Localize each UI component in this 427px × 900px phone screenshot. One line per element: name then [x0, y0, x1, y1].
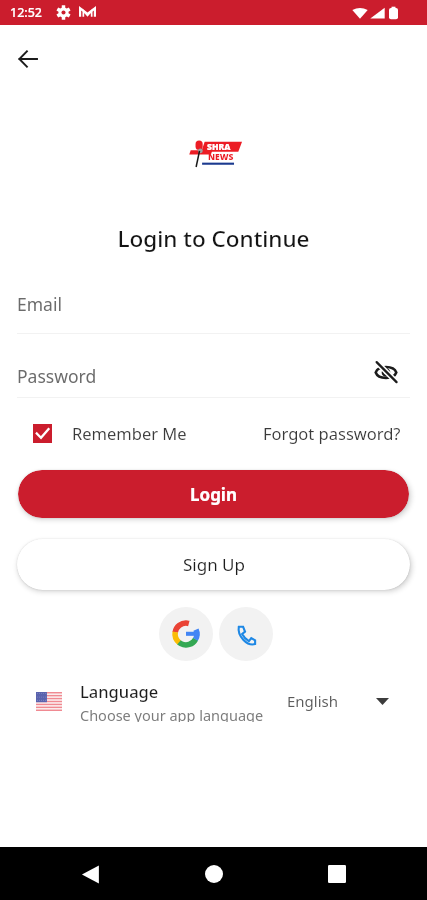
- staticText: Forgot password?: [263, 422, 401, 444]
- staticText: Remember Me: [72, 422, 187, 444]
- staticText: 12:52: [10, 4, 43, 21]
- staticText: Sign Up: [183, 553, 245, 576]
- staticText: Password: [17, 364, 97, 388]
- button[interactable]: Back: [4, 35, 52, 83]
- staticText: Login: [190, 483, 238, 506]
- staticText: SHRA: [207, 141, 231, 153]
- button[interactable]: Sign in with Google: [159, 607, 213, 661]
- button[interactable]: Recent apps: [313, 850, 361, 898]
- button[interactable]: Toggle password visibility: [373, 359, 399, 385]
- button[interactable]: Back: [66, 850, 114, 898]
- button[interactable]: Sign Up: [17, 539, 410, 590]
- button[interactable]: Home: [190, 850, 238, 898]
- staticText: English: [287, 691, 339, 711]
- button[interactable]: Language: [36, 680, 389, 722]
- staticText: Login to Continue: [0, 223, 427, 254]
- staticText: Email: [17, 292, 62, 316]
- button[interactable]: Sign in with phone: [219, 607, 273, 661]
- button[interactable]: Forgot password?: [263, 422, 401, 444]
- button[interactable]: Login: [18, 470, 409, 518]
- staticText: Language: [80, 680, 159, 702]
- button[interactable]: Remember Me: [33, 422, 187, 444]
- staticText: Choose your app language: [80, 705, 264, 722]
- staticText: NEWS: [208, 151, 234, 163]
